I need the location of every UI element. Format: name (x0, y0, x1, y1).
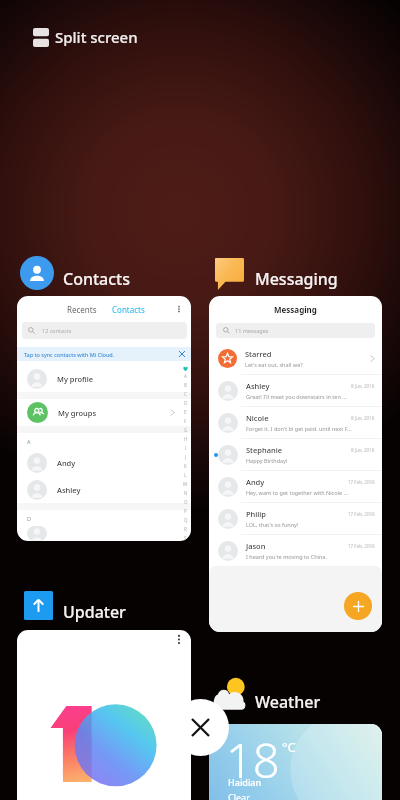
button[interactable]: Philip (213, 503, 375, 534)
staticText: °C (282, 738, 296, 756)
staticText: I heard you're moving to China. (246, 553, 327, 560)
staticText: Messaging (274, 304, 317, 315)
staticText: Split screen (55, 27, 138, 47)
staticText: 8 Jun, 2016 (351, 447, 375, 453)
staticText: 17 Feb, 2016 (348, 543, 375, 549)
button[interactable]: Messaging (255, 268, 338, 290)
staticText: Stephanie (246, 445, 282, 455)
staticText: Recents (67, 304, 97, 315)
staticText: Nicole (246, 413, 269, 423)
staticText: Ashley (57, 485, 81, 495)
button[interactable]: Andy (213, 471, 375, 502)
button[interactable]: Andy (27, 449, 183, 476)
staticText: 17 Feb, 2016 (348, 511, 375, 517)
staticText: Let's eat out, shall we? (245, 361, 303, 368)
button[interactable] (17, 630, 191, 800)
staticText: 17 Feb, 2016 (348, 479, 375, 485)
staticText: Forget it. I don't bl get paid. until ne… (246, 425, 352, 432)
button[interactable]: Split screen (33, 27, 138, 47)
button[interactable]: 18 (209, 724, 382, 800)
staticText: 12 contacts (42, 327, 72, 334)
button[interactable]: Messaging (209, 296, 382, 632)
staticText: Contacts (112, 304, 145, 315)
staticText: Philip (246, 509, 267, 519)
staticText: A (184, 373, 187, 379)
button[interactable]: Recents (17, 296, 191, 541)
staticText: 18 (226, 728, 280, 792)
staticText: Q (184, 517, 188, 523)
staticText: Contacts (63, 268, 131, 290)
staticText: Updater (63, 601, 126, 623)
staticText: F (184, 418, 187, 424)
staticText: My profile (57, 374, 94, 384)
staticText: G (184, 427, 188, 433)
button[interactable]: Weather (255, 691, 321, 713)
staticText: I (185, 445, 187, 451)
staticText: 8 Jun, 2016 (351, 415, 375, 421)
staticText: L (184, 472, 187, 478)
staticText: Andy (246, 477, 265, 487)
staticText: Tap to sync contacts with Mi Cloud. (24, 351, 115, 358)
button[interactable]: Starred (218, 343, 375, 374)
staticText: H (184, 436, 188, 442)
staticText: A (27, 438, 31, 445)
button[interactable] (27, 526, 183, 541)
button[interactable]: Contacts (63, 268, 131, 290)
staticText: O (184, 499, 188, 505)
staticText: My groups (58, 408, 97, 418)
button[interactable]: Jason (213, 535, 375, 566)
button[interactable]: New message (344, 592, 372, 620)
staticText: Jason (246, 541, 266, 551)
staticText: E (184, 409, 187, 415)
staticText: J (185, 454, 187, 460)
staticText: Andy (57, 458, 76, 468)
staticText: Happy Birthday! (246, 457, 288, 464)
staticText: Ashley (246, 381, 270, 391)
staticText: P (184, 508, 187, 514)
staticText: B (184, 382, 187, 388)
button[interactable]: My profile (27, 365, 183, 392)
staticText: R (184, 526, 187, 532)
button[interactable]: Nicole (213, 407, 375, 438)
staticText: Clear (228, 791, 250, 800)
staticText: 11 messages (235, 327, 269, 334)
button[interactable]: My groups (27, 399, 183, 426)
staticText: N (184, 490, 188, 496)
staticText: Messaging (255, 268, 338, 290)
staticText: Haidian (228, 776, 262, 788)
staticText: Weather (255, 691, 321, 713)
staticText: D (27, 515, 32, 522)
staticText: Hey, want to get together with Nicole ..… (246, 489, 348, 496)
staticText: LOL, that's so funny! (246, 521, 299, 528)
staticText: K (184, 463, 187, 469)
staticText: S (184, 535, 187, 541)
button[interactable]: Ashley (27, 476, 183, 503)
staticText: 8 Jun, 2016 (351, 383, 375, 389)
staticText: D (184, 400, 188, 406)
button[interactable]: Updater (63, 601, 126, 623)
button[interactable]: Close all recents (172, 699, 229, 756)
staticText: Great! I'll meet you downstairs in ten .… (246, 393, 347, 400)
staticText: M (183, 481, 188, 487)
staticText: Starred (245, 349, 272, 359)
button[interactable]: Ashley (213, 375, 375, 406)
button[interactable]: Stephanie (213, 439, 375, 470)
staticText: C (184, 391, 187, 397)
